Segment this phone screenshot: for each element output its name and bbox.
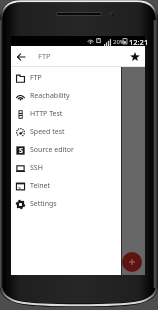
button[interactable]: Speed test [11, 123, 121, 141]
staticText: Settings [30, 199, 57, 209]
staticText: 20% [113, 38, 125, 46]
staticText: >_ [18, 184, 24, 191]
button[interactable]: Add [122, 252, 142, 272]
button[interactable]: Favorite [126, 48, 143, 65]
button[interactable]: HTTP Test [11, 105, 121, 123]
button[interactable]: Settings [11, 195, 121, 213]
staticText: FTP [38, 51, 51, 61]
button[interactable]: >_ [11, 177, 121, 195]
button[interactable]: FTP [11, 69, 121, 87]
button[interactable]: Reachability [11, 87, 121, 105]
staticText: Speed test [30, 127, 65, 137]
staticText: FTP [30, 73, 42, 83]
button[interactable]: S [11, 141, 121, 159]
staticText: HTTP Test [30, 109, 63, 119]
staticText: Reachability [30, 91, 70, 101]
staticText: S [19, 146, 23, 155]
staticText: SSH [30, 163, 43, 173]
staticText: Source editor [30, 145, 74, 155]
staticText: Telnet [30, 181, 50, 191]
button[interactable]: SSH [11, 159, 121, 177]
button[interactable]: Back [12, 48, 29, 65]
staticText: 12:21 [129, 37, 149, 47]
